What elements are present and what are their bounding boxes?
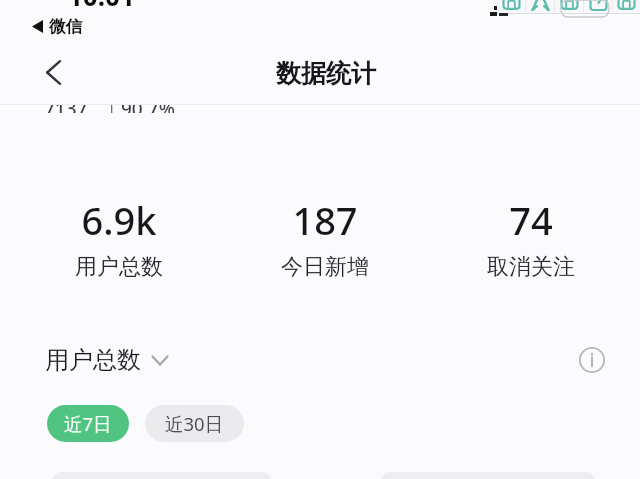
staticText: 用户总数 — [45, 345, 141, 375]
staticText: 近30日 — [165, 411, 224, 436]
button[interactable]: 近7日 — [47, 405, 129, 442]
button[interactable]: Editor tool — [497, 0, 525, 12]
button[interactable]: Editor tool — [555, 0, 583, 12]
button[interactable]: Info — [574, 342, 610, 378]
button[interactable]: 微信 — [32, 16, 82, 37]
button[interactable]: 187 — [222, 194, 428, 281]
staticText: 用户总数 — [75, 253, 163, 281]
button[interactable]: Editor tool — [584, 0, 612, 12]
button[interactable]: 74 — [428, 194, 634, 281]
button[interactable]: 用户总数 — [45, 339, 169, 381]
staticText: 近7日 — [64, 411, 112, 436]
button[interactable]: Editor tool — [526, 0, 554, 12]
staticText: 7137 ｜90.7% — [44, 105, 344, 113]
staticText: 取消关注 — [487, 253, 575, 281]
button[interactable]: Editor tool — [613, 0, 640, 12]
staticText: 数据统计 — [276, 58, 376, 89]
button[interactable]: 近30日 — [145, 405, 244, 442]
button[interactable]: 6.9k — [15, 194, 222, 281]
button[interactable]: Back — [33, 52, 73, 92]
staticText: 微信 — [49, 16, 82, 37]
staticText: 6.9k — [81, 194, 157, 246]
staticText: 10:01 — [68, 0, 135, 13]
staticText: 187 — [292, 194, 358, 246]
staticText: 74 — [509, 194, 553, 246]
staticText: 今日新增 — [281, 253, 369, 281]
